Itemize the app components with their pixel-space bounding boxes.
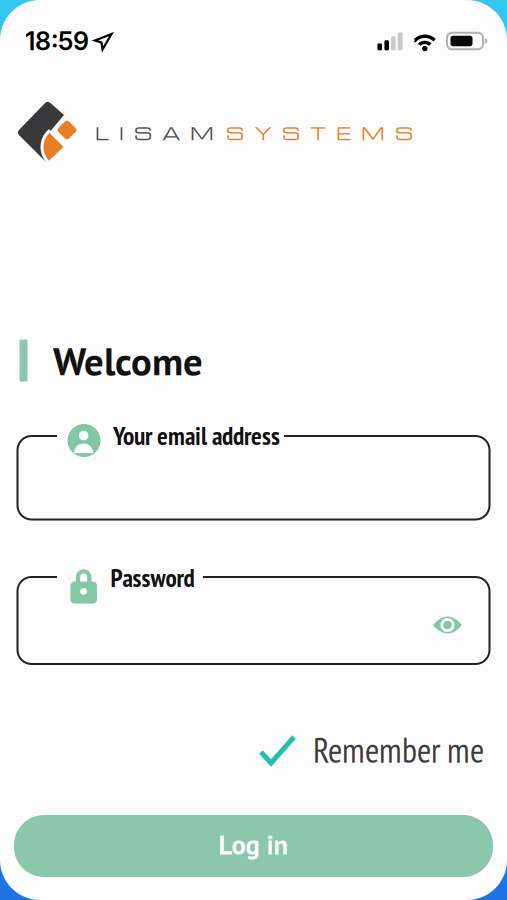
- staticText: Welcome: [53, 336, 203, 386]
- staticText: 18:59: [25, 26, 89, 56]
- staticText: Password: [110, 561, 194, 594]
- staticText: SYSTEMS: [226, 120, 413, 145]
- staticText: Remember me: [313, 728, 484, 772]
- button[interactable]: Your email address: [17, 424, 489, 519]
- staticText: Log in: [218, 827, 288, 862]
- button[interactable]: Show password: [425, 607, 469, 643]
- button[interactable]: Log in: [14, 815, 493, 877]
- button[interactable]: Remember me: [255, 730, 488, 770]
- staticText: Your email address: [113, 419, 280, 452]
- staticText: LISAM: [95, 120, 214, 145]
- button[interactable]: Password: [17, 565, 489, 664]
